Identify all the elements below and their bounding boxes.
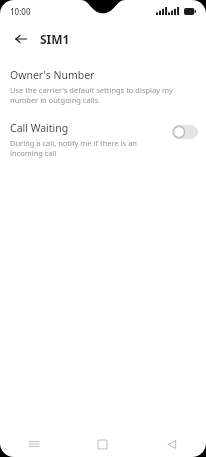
button[interactable]: Recents bbox=[0, 431, 68, 457]
staticText: Use the carrier's default settings to di… bbox=[10, 85, 192, 105]
staticText: SIM1 bbox=[40, 31, 70, 47]
staticText: During a call, notify me if there is an … bbox=[10, 138, 164, 158]
button[interactable]: Home bbox=[68, 431, 137, 457]
button[interactable]: Back bbox=[10, 28, 32, 50]
button[interactable]: Owner's Number bbox=[0, 66, 206, 107]
button[interactable]: Back bbox=[137, 431, 206, 457]
staticText: Owner's Number bbox=[10, 68, 95, 82]
button[interactable]: Call Waiting toggle bbox=[172, 125, 198, 139]
button[interactable]: Call Waiting bbox=[0, 119, 206, 160]
staticText: Call Waiting bbox=[10, 121, 69, 135]
staticText: 10:00 bbox=[10, 6, 31, 17]
